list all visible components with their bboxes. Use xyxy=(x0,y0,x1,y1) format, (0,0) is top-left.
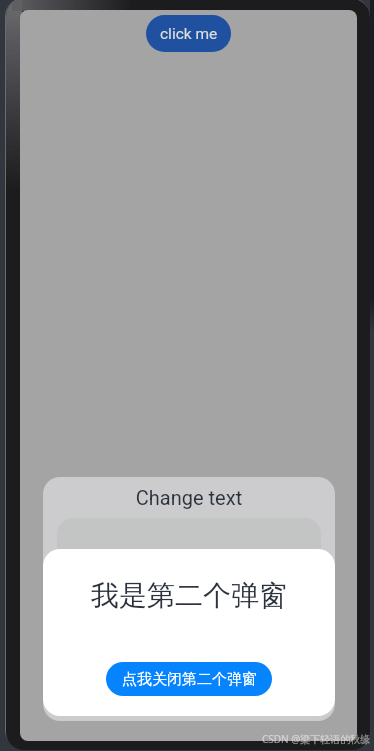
staticText: Change text xyxy=(43,486,335,509)
staticText: 点我关闭第二个弹窗 xyxy=(122,670,257,689)
staticText: 我是第二个弹窗 xyxy=(43,578,335,613)
button[interactable]: click me xyxy=(146,15,231,52)
staticText: CSDN @梁下轻语的秋缘 xyxy=(262,732,371,746)
staticText: click me xyxy=(160,25,218,43)
button[interactable]: 点我关闭第二个弹窗 xyxy=(106,662,272,696)
button[interactable] xyxy=(57,518,321,574)
